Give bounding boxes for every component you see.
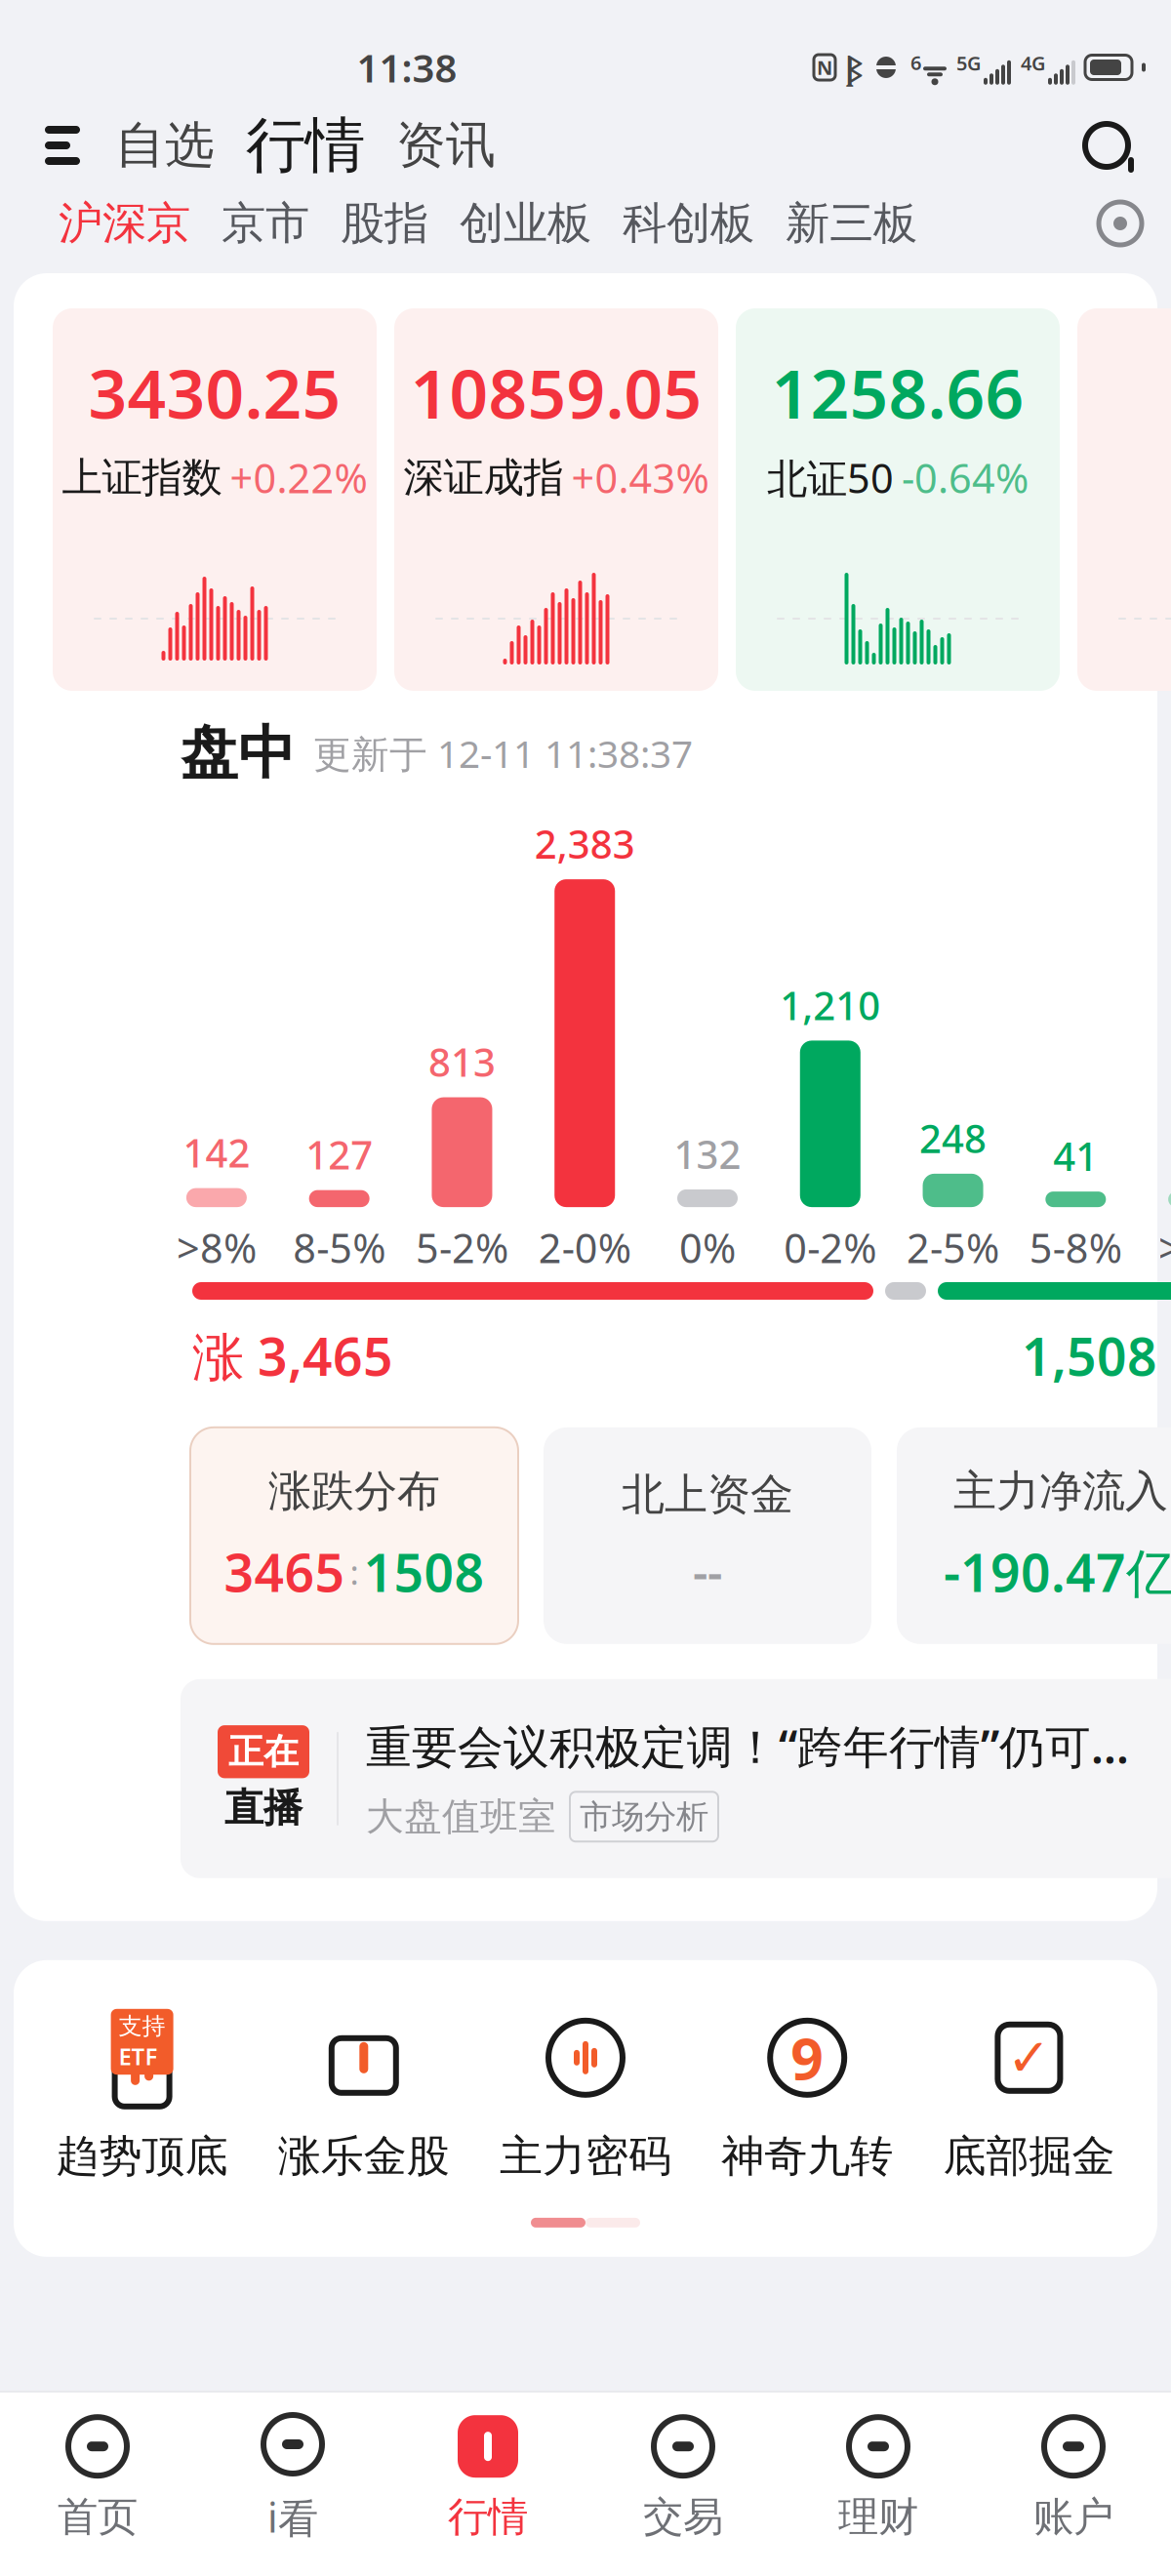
button[interactable]: ✓ bbox=[918, 2009, 1140, 2183]
button[interactable]: 行情 bbox=[230, 101, 381, 189]
staticText: 创业板 bbox=[460, 196, 591, 251]
staticText: 直播 bbox=[224, 1784, 303, 1832]
button[interactable]: 行情 bbox=[390, 2414, 585, 2542]
staticText: 10859.05 bbox=[410, 347, 702, 437]
staticText: 6 bbox=[910, 49, 921, 75]
staticText: 2-5% bbox=[907, 1221, 999, 1274]
button[interactable]: 新三板 bbox=[770, 189, 933, 258]
staticText: 主力密码 bbox=[500, 2130, 671, 2183]
staticText: -- bbox=[693, 1541, 722, 1603]
button[interactable]: 交易 bbox=[585, 2414, 781, 2542]
staticText: 142 bbox=[183, 1127, 250, 1178]
staticText: 1,508 跌 bbox=[1022, 1321, 1171, 1390]
staticText: >8% bbox=[1158, 1221, 1171, 1274]
staticText: 127 bbox=[306, 1128, 373, 1180]
staticText: 北上资金 bbox=[622, 1468, 793, 1521]
staticText: 科创板 bbox=[623, 196, 754, 251]
staticText: 市场分析 bbox=[580, 1797, 708, 1837]
staticText: 重要会议积极定调！“跨年行情”仍可... bbox=[366, 1716, 1129, 1776]
staticText: ᛒ bbox=[845, 46, 862, 89]
staticText: 1258.66 bbox=[771, 347, 1024, 437]
staticText: 支持ETF bbox=[119, 2012, 166, 2072]
button[interactable]: 北上资金 bbox=[544, 1427, 871, 1644]
button[interactable]: 9 bbox=[696, 2009, 918, 2183]
staticText: 底部掘金 bbox=[943, 2130, 1115, 2183]
staticText: 行情 bbox=[246, 109, 365, 182]
staticText: 趋势顶底 bbox=[56, 2130, 228, 2183]
button[interactable]: 京市 bbox=[206, 189, 325, 258]
staticText: 上证指数 bbox=[62, 453, 222, 502]
staticText: N bbox=[817, 54, 832, 80]
staticText: ✓ bbox=[1007, 2028, 1051, 2087]
button[interactable]: Menu bbox=[25, 101, 100, 189]
staticText: 248 bbox=[919, 1112, 987, 1164]
button[interactable]: 主力密码 bbox=[475, 2009, 696, 2183]
staticText: 账户 bbox=[1033, 2492, 1113, 2542]
button[interactable]: 股指 bbox=[325, 189, 444, 258]
button[interactable]: Customise sectors bbox=[1083, 189, 1157, 258]
button[interactable]: 沪深京 bbox=[43, 189, 206, 258]
button[interactable]: 1258.66 bbox=[736, 308, 1060, 691]
staticText: 11:38 bbox=[357, 41, 457, 93]
staticText: 主力净流入 bbox=[953, 1465, 1168, 1518]
staticText: 涨乐金股 bbox=[278, 2130, 450, 2183]
button[interactable]: 主力净流入 bbox=[897, 1427, 1171, 1644]
staticText: 5G bbox=[956, 50, 982, 76]
staticText: 京市 bbox=[222, 196, 309, 251]
staticText: 8-5% bbox=[293, 1221, 386, 1274]
staticText: i看 bbox=[267, 2490, 318, 2544]
button[interactable]: 盘中 bbox=[136, 691, 1171, 816]
staticText: 3430.25 bbox=[88, 347, 341, 437]
staticText: 自选 bbox=[115, 115, 215, 176]
button[interactable]: 3430.25 bbox=[53, 308, 377, 691]
button[interactable]: 支持ETF bbox=[31, 2009, 253, 2183]
staticText: 9 bbox=[791, 2020, 824, 2096]
button[interactable]: 涨乐金股 bbox=[253, 2009, 475, 2183]
staticText: 深证成指 bbox=[404, 453, 564, 502]
staticText: -190.47亿 bbox=[944, 1537, 1171, 1606]
staticText: 132 bbox=[674, 1128, 741, 1180]
button[interactable]: i看 bbox=[195, 2412, 390, 2544]
staticText: 股指 bbox=[341, 196, 428, 251]
staticText: 0% bbox=[679, 1221, 736, 1274]
staticText: 大盘值班室 bbox=[366, 1794, 556, 1840]
button[interactable]: 科创板 bbox=[607, 189, 770, 258]
staticText: 更新于 12-11 11:38:37 bbox=[313, 728, 693, 778]
staticText: 北证50 bbox=[767, 451, 894, 504]
button[interactable]: 首页 bbox=[0, 2414, 195, 2542]
staticText: -0.64% bbox=[902, 451, 1029, 504]
button[interactable]: Search bbox=[1068, 101, 1146, 189]
staticText: 理财 bbox=[838, 2492, 918, 2542]
staticText: 首页 bbox=[58, 2492, 138, 2542]
staticText: 0-2% bbox=[784, 1221, 877, 1274]
staticText: 2,383 bbox=[534, 818, 635, 869]
staticText: +0.22% bbox=[230, 451, 367, 504]
staticText: 涨跌分布 bbox=[268, 1465, 440, 1518]
button[interactable]: 正在 bbox=[181, 1679, 1171, 1878]
button[interactable]: 资讯 bbox=[381, 101, 511, 189]
staticText: 1,210 bbox=[780, 979, 880, 1031]
staticText: 1508 bbox=[363, 1537, 485, 1606]
button[interactable]: 涨跌分布 bbox=[190, 1427, 518, 1644]
staticText: 813 bbox=[428, 1036, 496, 1087]
staticText: 神奇九转 bbox=[721, 2130, 893, 2183]
staticText: 行情 bbox=[448, 2492, 528, 2542]
staticText: 资讯 bbox=[396, 115, 496, 176]
staticText: : bbox=[350, 1549, 359, 1594]
staticText: 3465 bbox=[224, 1537, 345, 1606]
button[interactable]: 理财 bbox=[781, 2414, 976, 2542]
button[interactable]: 10859.05 bbox=[394, 308, 718, 691]
staticText: 涨 3,465 bbox=[192, 1321, 393, 1390]
staticText: >8% bbox=[177, 1221, 257, 1274]
button[interactable]: 账户 bbox=[976, 2414, 1171, 2542]
button[interactable]: 创业板 bbox=[444, 189, 607, 258]
staticText: 交易 bbox=[643, 2492, 723, 2542]
staticText: 5-8% bbox=[1029, 1221, 1122, 1274]
staticText: 盘中 bbox=[181, 718, 296, 789]
staticText: 5-2% bbox=[416, 1221, 508, 1274]
staticText: 4G bbox=[1021, 50, 1046, 76]
button[interactable]: 自选 bbox=[100, 101, 230, 189]
staticText: 沪深京 bbox=[59, 196, 190, 251]
staticText: 新三板 bbox=[786, 196, 917, 251]
